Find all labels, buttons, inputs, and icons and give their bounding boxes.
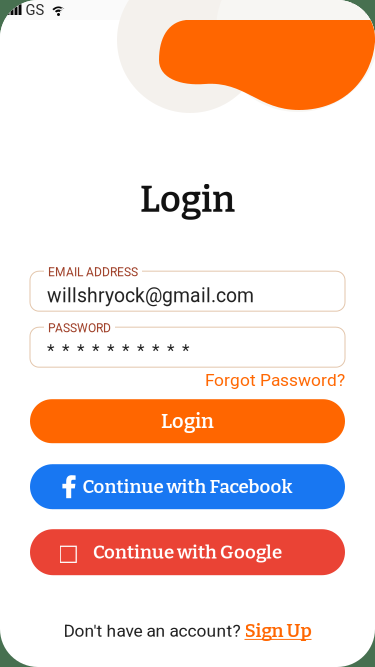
staticText: GS xyxy=(25,1,44,19)
staticText: Don't have an account? xyxy=(63,621,244,641)
staticText: Login xyxy=(140,178,235,221)
staticText: PASSWORD xyxy=(48,321,111,335)
staticText: Continue with Google xyxy=(93,541,282,563)
button[interactable]: Continue with Facebook xyxy=(30,464,345,509)
button[interactable]: Sign Up xyxy=(244,620,311,642)
staticText: Forgot Password? xyxy=(205,370,345,390)
staticText: Login xyxy=(161,409,214,433)
staticText: willshryock@gmail.com xyxy=(47,284,254,307)
button[interactable]: Forgot Password? xyxy=(30,367,345,393)
staticText: Sign Up xyxy=(244,620,311,642)
button[interactable]: Login xyxy=(30,399,345,443)
button[interactable]: Continue with Google xyxy=(30,529,345,575)
staticText: * * * * * * * * * * xyxy=(47,340,189,360)
staticText: Continue with Facebook xyxy=(82,475,292,498)
staticText: EMAIL ADDRESS xyxy=(48,265,138,279)
staticText: □ xyxy=(57,539,78,565)
